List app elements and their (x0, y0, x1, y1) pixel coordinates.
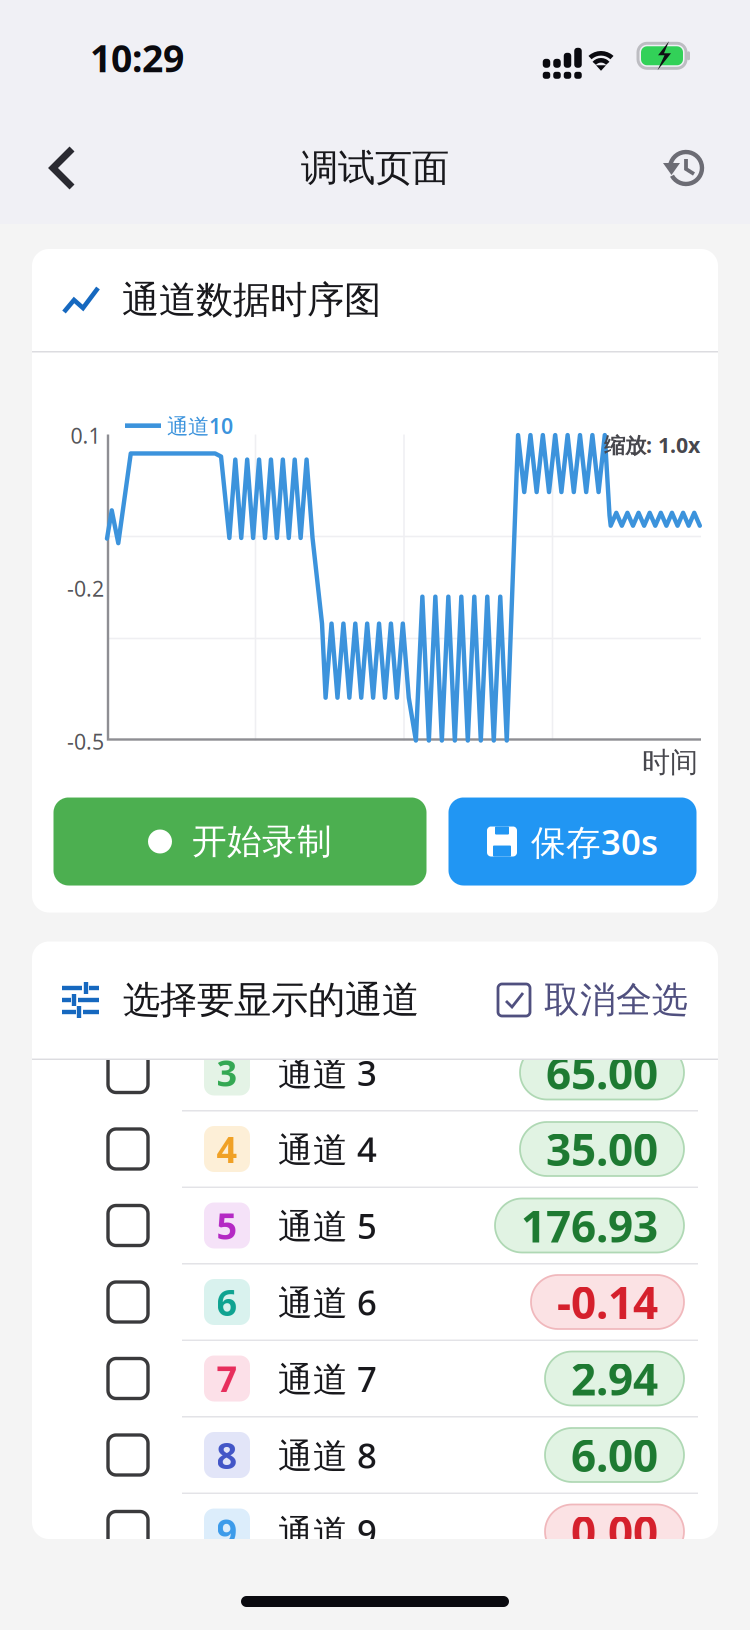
staticText: 时间 (642, 745, 698, 780)
staticText: 3 (216, 1049, 237, 1096)
staticText: 通道 4 (278, 1126, 377, 1172)
staticText: -0.14 (557, 1273, 658, 1331)
staticText: 通道10 (167, 411, 233, 440)
staticText: 9 (216, 1508, 237, 1555)
staticText: 10:29 (90, 33, 184, 83)
staticText: 调试页面 (301, 145, 449, 191)
staticText: 选择要显示的通道 (123, 977, 419, 1023)
staticText: 176.93 (521, 1196, 658, 1255)
button[interactable]: 保存30s (448, 797, 696, 885)
staticText: 8 (216, 1431, 237, 1479)
button[interactable]: 3 (32, 1035, 718, 1110)
staticText: -0.5 (67, 727, 104, 756)
button[interactable]: Back (22, 123, 104, 213)
staticText: 通道 5 (278, 1202, 377, 1248)
staticText: 保存30s (531, 818, 658, 864)
button[interactable]: 7 (32, 1341, 718, 1416)
button[interactable]: 8 (32, 1417, 718, 1492)
staticText: -0.2 (67, 574, 104, 603)
staticText: 缩放: 1.0x (604, 430, 700, 459)
staticText: 通道 7 (278, 1355, 377, 1401)
staticText: 通道 6 (278, 1279, 377, 1325)
button[interactable]: History (640, 126, 728, 210)
staticText: 通道 9 (278, 1508, 377, 1554)
staticText: 2.94 (571, 1349, 658, 1408)
staticText: 65.00 (546, 1043, 658, 1102)
staticText: 5 (216, 1202, 237, 1249)
staticText: 7 (216, 1355, 237, 1402)
button[interactable]: 6 (32, 1264, 718, 1339)
staticText: 0.00 (571, 1502, 658, 1561)
button[interactable]: 4 (32, 1111, 718, 1186)
staticText: 通道 3 (278, 1049, 377, 1095)
staticText: 4 (216, 1125, 237, 1173)
staticText: 通道 8 (278, 1432, 377, 1478)
button[interactable]: 9 (32, 1494, 718, 1569)
button[interactable]: 取消全选 (498, 978, 688, 1022)
staticText: 取消全选 (544, 978, 688, 1022)
staticText: 6.00 (571, 1426, 658, 1484)
staticText: 35.00 (546, 1120, 658, 1178)
staticText: 0.1 (70, 421, 100, 450)
button[interactable]: 5 (32, 1188, 718, 1263)
button[interactable]: 开始录制 (53, 797, 426, 885)
staticText: 6 (216, 1278, 237, 1326)
staticText: 通道数据时序图 (122, 277, 381, 323)
staticText: 开始录制 (192, 820, 332, 863)
